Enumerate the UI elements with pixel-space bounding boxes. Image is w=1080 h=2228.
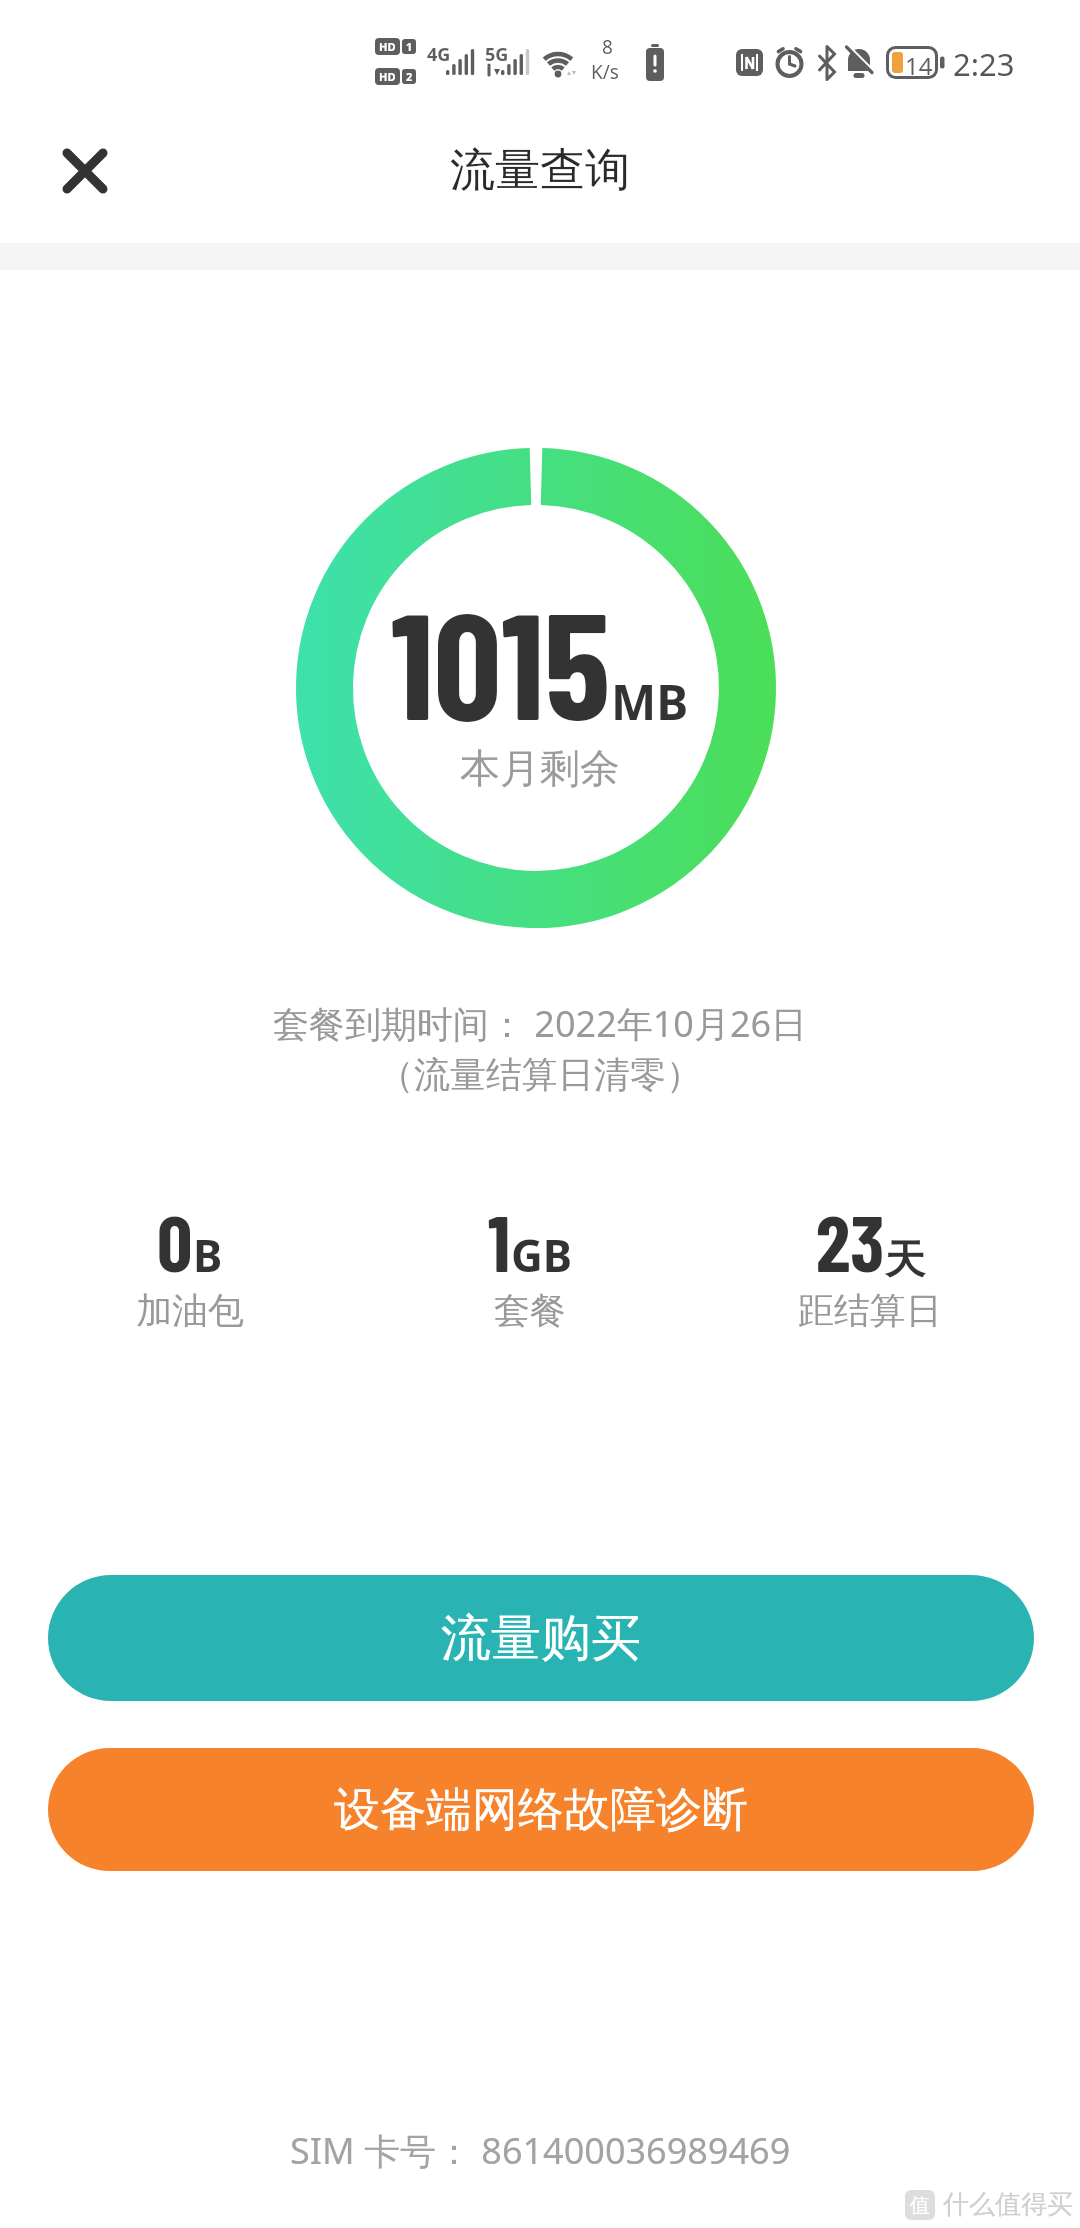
staticText: 流量查询	[450, 142, 630, 199]
staticText: 加油包	[136, 1288, 244, 1333]
staticText: MB	[611, 669, 689, 734]
staticText: 0	[157, 1194, 193, 1288]
staticText: 1	[488, 1194, 511, 1288]
staticText: 4G	[427, 42, 451, 67]
button[interactable]	[35, 121, 135, 221]
staticText: 天	[885, 1234, 925, 1284]
staticText: 值	[910, 2193, 930, 2218]
staticText: 2:23	[953, 43, 1015, 85]
staticText: K/s	[591, 59, 619, 85]
staticText: 套餐	[494, 1288, 566, 1333]
staticText: GB	[511, 1225, 573, 1285]
button[interactable]: 设备端网络故障诊断	[48, 1748, 1034, 1871]
button[interactable]: 流量购买	[48, 1575, 1034, 1701]
staticText: 距结算日	[798, 1288, 942, 1333]
staticText: 设备端网络故障诊断	[334, 1781, 748, 1839]
staticText: 1	[406, 39, 413, 54]
staticText: 套餐到期时间： 2022年10月26日	[273, 999, 808, 1048]
staticText: 23	[816, 1194, 885, 1288]
staticText: 8	[602, 34, 613, 60]
staticText: 5G	[485, 42, 509, 67]
staticText: （流量结算日清零）	[378, 1052, 702, 1097]
staticText: SIM 卡号： 861400036989469	[290, 2126, 791, 2175]
staticText: 1015	[391, 570, 611, 750]
staticText: HD	[379, 39, 396, 54]
staticText: 流量购买	[441, 1607, 641, 1670]
staticText: HD	[379, 69, 396, 84]
staticText: 本月剩余	[460, 743, 620, 793]
staticText: 2	[406, 69, 413, 84]
staticText: 14	[905, 49, 933, 82]
staticText: B	[193, 1225, 223, 1285]
staticText: 什么值得买	[943, 2188, 1073, 2221]
